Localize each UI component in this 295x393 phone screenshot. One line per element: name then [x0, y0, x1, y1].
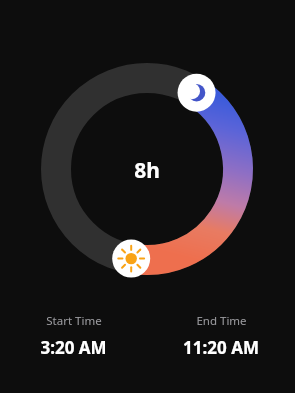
staticText: 3:20 AM [40, 336, 107, 359]
button[interactable]: Start Time [0, 313, 147, 359]
staticText: End Time [196, 313, 247, 329]
button[interactable]: 8h [104, 155, 190, 185]
staticText: Start Time [46, 313, 102, 329]
button[interactable]: End Time [147, 313, 295, 359]
staticText: 11:20 AM [183, 336, 259, 359]
staticText: 8h [134, 156, 160, 185]
button[interactable]: Bedtime handle [194, 92, 234, 132]
button[interactable]: Wake up handle [144, 241, 184, 281]
